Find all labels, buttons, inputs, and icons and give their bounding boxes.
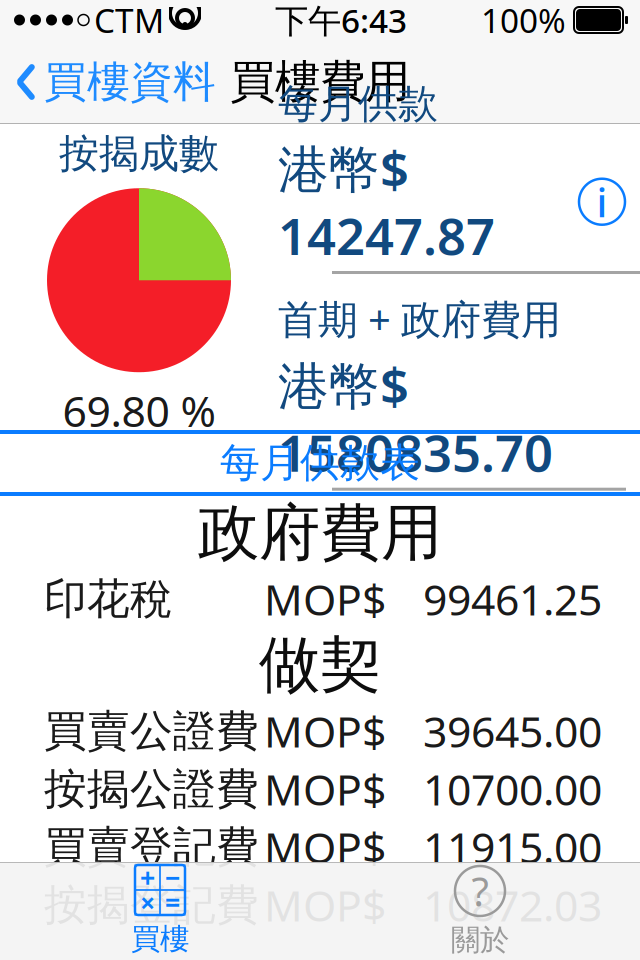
staticText: 買樓 — [131, 921, 189, 957]
staticText: 買樓資料 — [44, 56, 216, 108]
staticText: 10700.00 — [423, 761, 602, 817]
staticText: ? — [471, 864, 488, 917]
staticText: 39645.00 — [423, 703, 602, 759]
staticText: CTM — [94, 0, 164, 42]
button[interactable]: 買樓資料 — [0, 46, 216, 118]
staticText: − — [165, 860, 180, 895]
staticText: MOP$ — [264, 761, 386, 817]
staticText: 按揭登記費 — [44, 879, 259, 931]
staticText: i — [596, 175, 607, 228]
staticText: MOP$ — [264, 877, 386, 933]
staticText: 11915.00 — [423, 819, 602, 875]
staticText: = — [165, 885, 180, 920]
staticText: 買賣登記費 — [44, 821, 259, 873]
staticText: 100% — [481, 0, 566, 42]
staticText: 99461.25 — [423, 571, 602, 627]
staticText: 69.80 % — [62, 382, 215, 439]
staticText: 印花稅 — [44, 573, 173, 625]
staticText: 按揭公證費 — [44, 763, 259, 815]
staticText: 買賣公證費 — [44, 705, 259, 757]
button[interactable]: 資料 — [574, 174, 630, 230]
staticText: 每月供款 — [278, 79, 438, 128]
button[interactable]: 每月供款表 — [0, 434, 640, 492]
staticText: 買樓費用 — [230, 54, 410, 110]
staticText: + — [140, 860, 155, 895]
staticText: 政府費用 — [198, 495, 442, 571]
staticText: 下午6:43 — [275, 0, 407, 42]
button[interactable]: ? — [320, 862, 640, 960]
staticText: 每月供款表 — [220, 438, 420, 487]
staticText: 港幣$ 14247.87 — [278, 134, 495, 269]
staticText: MOP$ — [264, 571, 386, 627]
staticText: × — [140, 885, 155, 920]
staticText: 首期 + 政府費用 — [278, 292, 561, 345]
staticText: 港幣$ 1580835.70 — [278, 351, 553, 486]
staticText: 按揭成數 — [59, 129, 219, 178]
button[interactable]: + — [0, 862, 320, 960]
staticText: MOP$ — [264, 703, 386, 759]
staticText: 做契 — [259, 627, 381, 703]
staticText: 關於 — [451, 922, 509, 958]
staticText: 10872.03 — [423, 877, 602, 933]
staticText: MOP$ — [264, 819, 386, 875]
